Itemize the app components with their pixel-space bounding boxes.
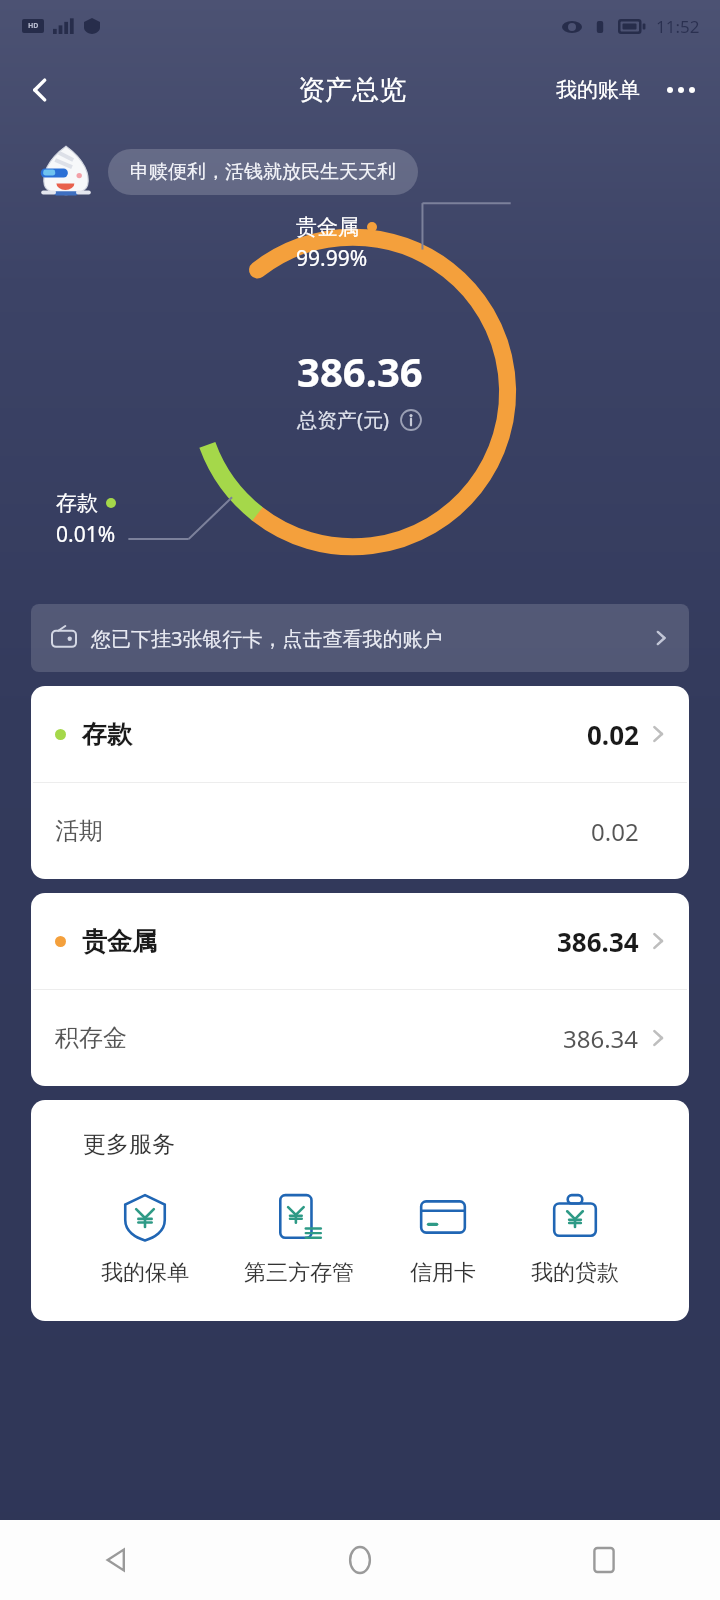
button[interactable]: 我的保单 [95, 1187, 195, 1291]
button[interactable]: 存款 [31, 686, 689, 782]
button[interactable]: 我的账单 [548, 67, 648, 113]
button[interactable]: 贵金属 [31, 893, 689, 989]
staticText: 存款 [56, 490, 98, 516]
staticText: 386.34 [563, 1022, 639, 1055]
staticText: 贵金属 [82, 926, 157, 957]
button[interactable]: Back [90, 1534, 142, 1586]
button[interactable]: 您已下挂3张银行卡，点击查看我的账户 [31, 604, 689, 672]
staticText: 申赎便利，活钱就放民生天天利 [130, 160, 396, 184]
staticText: 信用卡 [410, 1259, 476, 1287]
staticText: 386.34 [557, 924, 639, 959]
staticText: 存款 [82, 719, 132, 750]
button[interactable]: Home [334, 1534, 386, 1586]
staticText: 积存金 [55, 1023, 127, 1053]
button[interactable]: 第三方存管 [238, 1187, 360, 1291]
staticText: 我的保单 [101, 1259, 189, 1287]
button[interactable]: 更多 [658, 67, 704, 113]
staticText: 0.02 [587, 717, 639, 752]
staticText: 第三方存管 [244, 1259, 354, 1287]
button[interactable]: 说明 [399, 408, 423, 432]
staticText: 总资产(元) [297, 406, 389, 433]
staticText: 您已下挂3张银行卡，点击查看我的账户 [91, 625, 443, 652]
staticText: 资产总览 [298, 73, 406, 107]
button[interactable]: 活期 [31, 783, 689, 879]
button[interactable]: Recents [578, 1534, 630, 1586]
staticText: 我的贷款 [531, 1259, 619, 1287]
staticText: 更多服务 [83, 1130, 175, 1159]
staticText: 活期 [55, 816, 103, 846]
button[interactable]: 返回 [12, 62, 68, 118]
staticText: 0.01% [56, 520, 116, 549]
staticText: 0.02 [591, 815, 639, 848]
button[interactable]: 信用卡 [404, 1187, 482, 1291]
button[interactable]: 积存金 [31, 990, 689, 1086]
staticText: 386.36 [297, 344, 423, 398]
staticText: 我的账单 [556, 77, 640, 103]
staticText: 99.99% [296, 244, 368, 273]
button[interactable]: 我的贷款 [525, 1187, 625, 1291]
button[interactable]: 申赎便利，活钱就放民生天天利 [108, 149, 418, 195]
staticText: 11:52 [656, 15, 700, 38]
staticText: HD [28, 21, 39, 31]
staticText: 贵金属 [296, 214, 359, 240]
